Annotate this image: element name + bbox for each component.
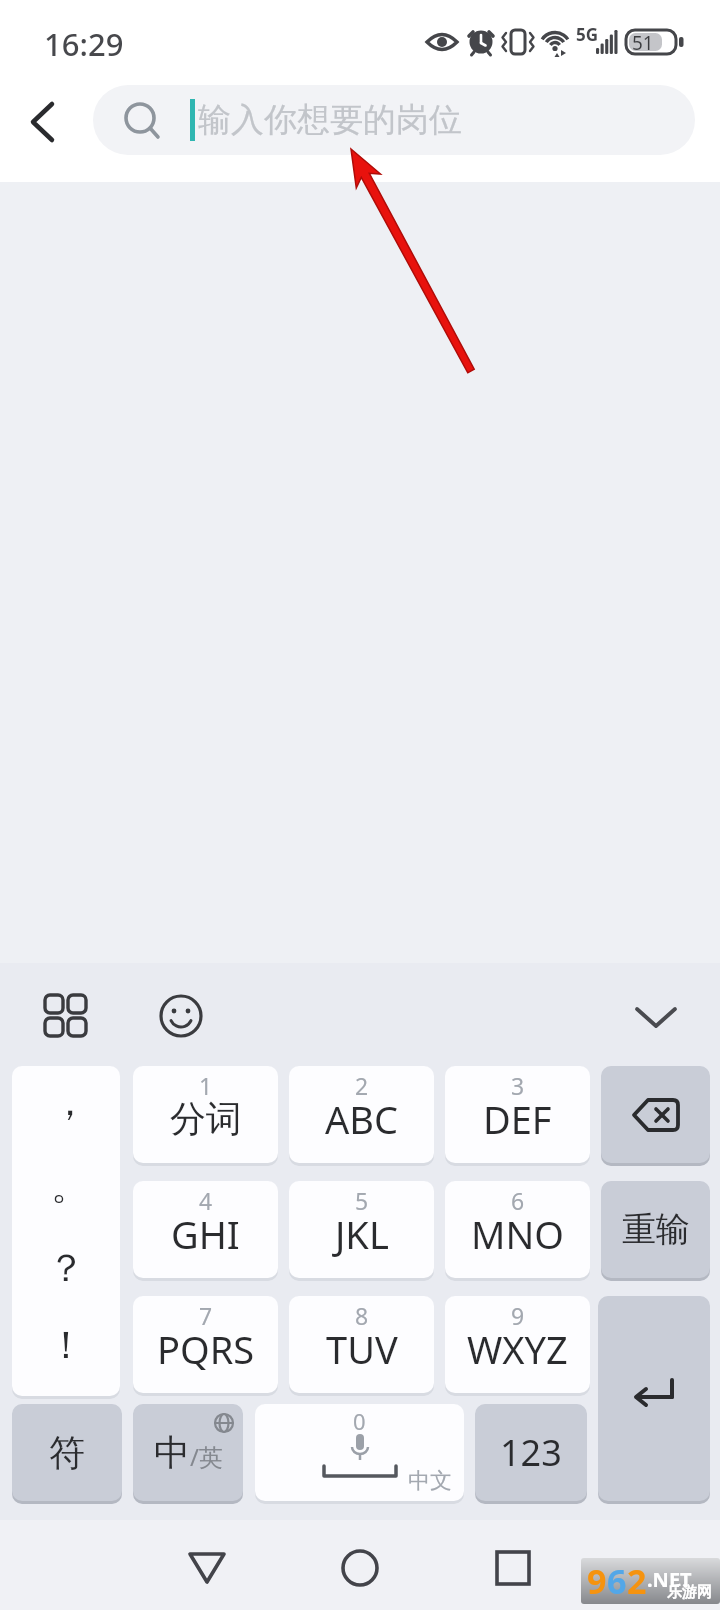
button[interactable]	[338, 1546, 382, 1590]
staticText: 4	[199, 1185, 213, 1216]
button[interactable]	[185, 1546, 229, 1590]
staticText: 重输	[622, 1208, 690, 1251]
button[interactable]: 8	[289, 1296, 434, 1393]
button[interactable]	[40, 990, 92, 1042]
staticText: 。	[51, 1162, 89, 1210]
staticText: DEF	[483, 1093, 552, 1145]
button[interactable]: 重输	[601, 1181, 710, 1278]
staticText: 中文	[408, 1467, 452, 1495]
button[interactable]: 5	[289, 1181, 434, 1278]
staticText: 51	[632, 30, 654, 56]
button[interactable]: 4	[133, 1181, 278, 1278]
staticText: 6	[607, 1558, 627, 1604]
button[interactable]: 0	[255, 1404, 464, 1501]
staticText: 输入你想要的岗位	[198, 99, 462, 141]
button[interactable]: 123	[475, 1404, 587, 1501]
button[interactable]: 2	[289, 1066, 434, 1163]
staticText: 2	[355, 1070, 369, 1101]
staticText: 3	[511, 1070, 525, 1101]
staticText: ABC	[325, 1093, 398, 1145]
button[interactable]	[491, 1546, 535, 1590]
staticText: 7	[199, 1300, 213, 1331]
staticText: 中	[154, 1430, 190, 1475]
button[interactable]: ，	[12, 1066, 120, 1396]
staticText: /英	[190, 1440, 223, 1473]
button[interactable]	[20, 100, 64, 144]
staticText: ？	[47, 1244, 85, 1292]
button[interactable]	[598, 1296, 710, 1501]
staticText: 16:29	[44, 23, 124, 65]
button[interactable]: 9	[445, 1296, 590, 1393]
button[interactable]: 中	[133, 1404, 243, 1501]
staticText: 6	[511, 1185, 525, 1216]
staticText: ，	[51, 1078, 89, 1126]
staticText: GHI	[171, 1208, 240, 1260]
staticText: 乐游网	[667, 1583, 712, 1602]
staticText: 8	[355, 1300, 369, 1331]
button[interactable]: 6	[445, 1181, 590, 1278]
staticText: 分词	[170, 1096, 242, 1141]
button[interactable]	[601, 1066, 710, 1163]
button[interactable]: 1	[133, 1066, 278, 1163]
button[interactable]: 7	[133, 1296, 278, 1393]
staticText: 123	[500, 1428, 562, 1477]
button[interactable]	[155, 990, 207, 1042]
staticText: MNO	[471, 1208, 565, 1260]
staticText: 1	[199, 1070, 213, 1101]
staticText: WXYZ	[467, 1323, 568, 1375]
staticText: 0	[353, 1406, 366, 1436]
staticText: 5	[355, 1185, 369, 1216]
button[interactable]: 符	[12, 1404, 122, 1501]
button[interactable]: 3	[445, 1066, 590, 1163]
staticText: .NET	[647, 1566, 692, 1593]
staticText: JKL	[335, 1208, 389, 1260]
staticText: PQRS	[157, 1323, 255, 1375]
staticText: 9	[587, 1558, 607, 1604]
staticText: 9	[511, 1300, 525, 1331]
staticText: 符	[49, 1430, 85, 1475]
staticText: 5G	[576, 23, 599, 46]
staticText: 2	[627, 1558, 647, 1604]
button[interactable]: 输入你想要的岗位	[93, 85, 695, 155]
staticText: ！	[47, 1321, 85, 1369]
staticText: TUV	[326, 1323, 398, 1375]
button[interactable]	[630, 995, 682, 1039]
